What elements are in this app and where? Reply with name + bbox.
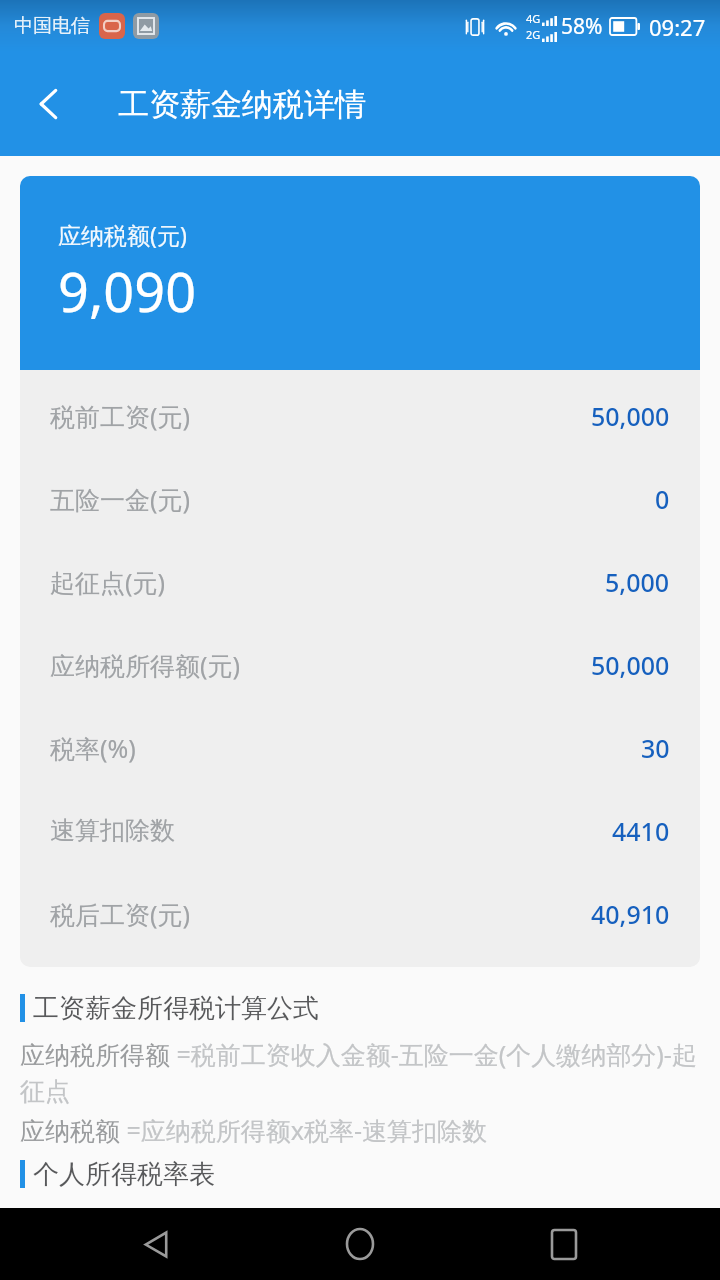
- button[interactable]: 税率(%): [20, 706, 700, 789]
- staticText: 应纳税所得额(元): [50, 648, 241, 682]
- staticText: 应纳税所得额 =税前工资收入金额-五险一金(个人缴纳部分)-起征点: [20, 1037, 700, 1107]
- button[interactable]: 起征点(元): [20, 540, 700, 623]
- button[interactable]: Back: [108, 1208, 204, 1280]
- staticText: 4410: [612, 814, 670, 848]
- staticText: 4G: [526, 11, 541, 26]
- button[interactable]: Back: [22, 76, 78, 132]
- button[interactable]: 五险一金(元): [20, 457, 700, 540]
- staticText: 中国电信: [14, 14, 90, 38]
- staticText: 50,000: [591, 648, 670, 682]
- staticText: 30: [641, 731, 670, 765]
- button[interactable]: Home: [312, 1208, 408, 1280]
- button[interactable]: Recent apps: [516, 1208, 612, 1280]
- staticText: 工资薪金纳税详情: [118, 85, 366, 124]
- staticText: 起征点(元): [50, 565, 166, 599]
- staticText: 09:27: [649, 12, 706, 42]
- staticText: 税后工资(元): [50, 897, 191, 931]
- staticText: 58%: [561, 12, 603, 41]
- staticText: 个人所得税率表: [33, 1158, 215, 1191]
- staticText: 5,000: [605, 565, 670, 599]
- staticText: 五险一金(元): [50, 482, 191, 516]
- staticText: 40,910: [591, 897, 670, 931]
- staticText: 应纳税额(元): [58, 219, 187, 250]
- staticText: 2G: [526, 27, 541, 42]
- button[interactable]: 税后工资(元): [20, 872, 700, 955]
- staticText: 应纳税额 =应纳税所得额x税率-速算扣除数: [20, 1113, 488, 1147]
- staticText: 速算扣除数: [50, 815, 175, 846]
- staticText: 0: [655, 482, 670, 516]
- button[interactable]: 速算扣除数: [20, 789, 700, 872]
- button[interactable]: 税前工资(元): [20, 374, 700, 457]
- button[interactable]: 应纳税所得额(元): [20, 623, 700, 706]
- staticText: 9,090: [58, 254, 197, 328]
- staticText: 税率(%): [50, 731, 136, 765]
- staticText: 工资薪金所得税计算公式: [33, 992, 319, 1025]
- staticText: 50,000: [591, 399, 670, 433]
- staticText: 税前工资(元): [50, 399, 191, 433]
